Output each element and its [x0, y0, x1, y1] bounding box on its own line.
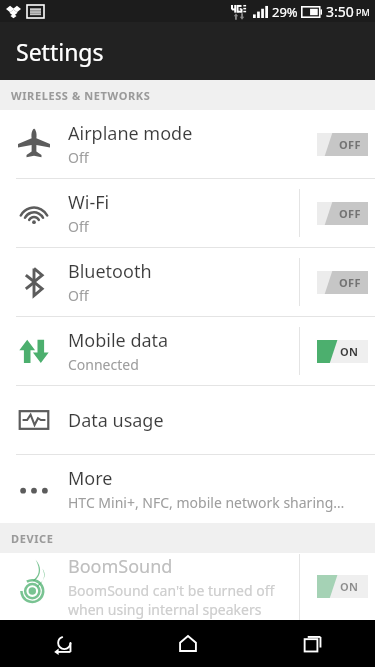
staticText: WIRELESS & NETWORKS: [11, 88, 151, 103]
staticText: DEVICE: [11, 531, 54, 546]
button[interactable]: Bluetooth: [0, 248, 375, 316]
button[interactable]: Recents: [250, 620, 375, 667]
button[interactable]: Mobile data: [0, 317, 375, 385]
staticText: 29%: [272, 3, 298, 21]
staticText: Connected: [68, 355, 139, 374]
button[interactable]: Toggle on: [317, 575, 368, 598]
staticText: OFF: [339, 137, 361, 152]
staticText: 3:50: [326, 2, 354, 21]
staticText: Bluetooth: [68, 259, 152, 284]
staticText: ON: [340, 579, 359, 594]
button[interactable]: Back: [0, 620, 125, 667]
button[interactable]: Toggle off: [317, 133, 368, 156]
button[interactable]: Home: [125, 620, 250, 667]
staticText: OFF: [339, 206, 361, 221]
staticText: More: [68, 466, 113, 491]
staticText: PM: [356, 6, 370, 18]
staticText: Data usage: [68, 408, 164, 433]
button[interactable]: Toggle off: [317, 271, 368, 294]
button[interactable]: Airplane mode: [0, 110, 375, 178]
staticText: Mobile data: [68, 328, 169, 353]
staticText: BoomSound: [68, 554, 173, 579]
staticText: Off: [68, 217, 89, 236]
staticText: Settings: [16, 36, 104, 67]
button[interactable]: Toggle on: [317, 340, 368, 363]
button[interactable]: Toggle off: [317, 202, 368, 225]
button[interactable]: More: [0, 455, 375, 523]
staticText: Wi-Fi: [68, 190, 110, 215]
button[interactable]: BoomSound: [0, 553, 375, 620]
staticText: Off: [68, 286, 89, 305]
staticText: Off: [68, 148, 89, 167]
button[interactable]: Wi-Fi: [0, 179, 375, 247]
button[interactable]: Data usage: [0, 386, 375, 454]
staticText: ON: [340, 344, 359, 359]
staticText: HTC Mini+, NFC, mobile network sharing…: [68, 493, 345, 512]
staticText: Airplane mode: [68, 121, 193, 146]
staticText: BoomSound can't be turned off when using…: [68, 581, 275, 619]
staticText: OFF: [339, 275, 361, 290]
